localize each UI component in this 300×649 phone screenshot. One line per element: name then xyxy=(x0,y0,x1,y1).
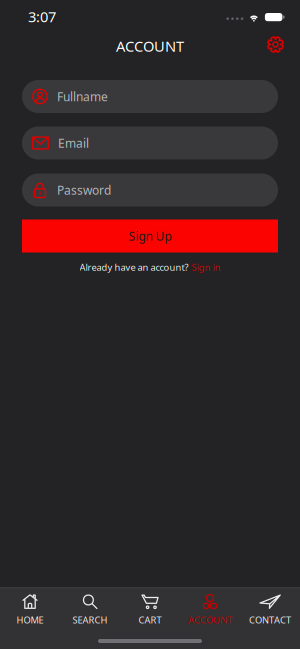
staticText: CART xyxy=(138,614,161,626)
button[interactable]: ACCOUNT xyxy=(180,594,240,626)
button[interactable]: Sign in xyxy=(191,261,220,273)
staticText: Sign Up xyxy=(128,228,171,244)
staticText: Already have an account? xyxy=(79,261,188,273)
button[interactable]: Email xyxy=(22,126,278,159)
staticText: HOME xyxy=(16,614,43,626)
staticText: Sign in xyxy=(191,261,220,273)
staticText: ACCOUNT xyxy=(116,36,184,56)
button[interactable]: HOME xyxy=(0,594,60,626)
staticText: ACCOUNT xyxy=(188,614,232,626)
staticText: Email xyxy=(58,135,89,151)
button[interactable]: Sign Up xyxy=(22,219,278,252)
button[interactable] xyxy=(267,36,284,53)
staticText: Password xyxy=(57,182,111,198)
staticText: SEARCH xyxy=(72,614,107,626)
staticText: CONTACT xyxy=(249,614,291,626)
button[interactable]: SEARCH xyxy=(60,594,120,626)
staticText: 3:07 xyxy=(28,7,56,26)
button[interactable]: CART xyxy=(120,594,180,626)
button[interactable]: Fullname xyxy=(22,80,278,113)
button[interactable]: CONTACT xyxy=(240,594,300,626)
staticText: Fullname xyxy=(57,88,108,104)
button[interactable]: Password xyxy=(22,173,278,206)
